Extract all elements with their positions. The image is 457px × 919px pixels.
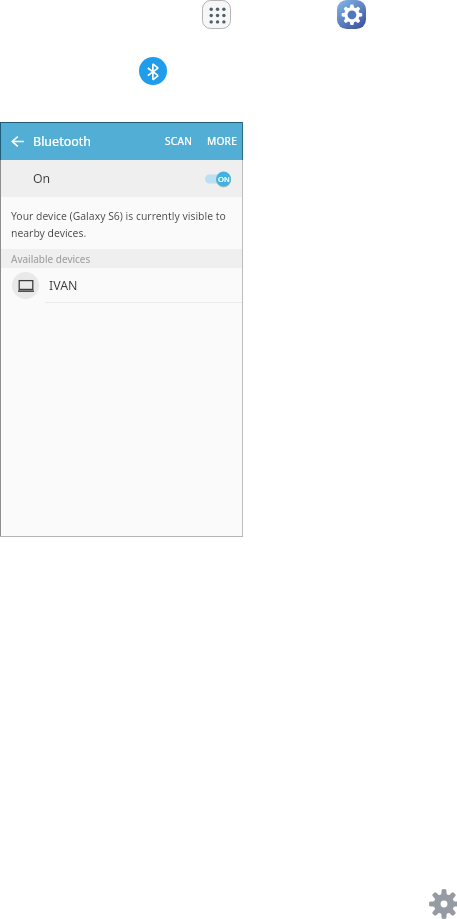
button[interactable]: Settings	[337, 0, 366, 29]
button[interactable]: SCAN	[160, 122, 198, 160]
staticText: Available devices	[11, 252, 91, 266]
button[interactable]: Navigate up	[4, 127, 32, 155]
button[interactable]: Apps	[202, 0, 231, 29]
button[interactable]: Settings	[428, 888, 457, 919]
staticText: MORE	[207, 134, 237, 148]
staticText: Your device (Galaxy S6) is currently vis…	[11, 209, 243, 240]
staticText: ON	[218, 174, 230, 184]
staticText: Bluetooth	[33, 133, 92, 150]
button[interactable]: MORE	[202, 122, 242, 160]
button[interactable]: IVAN	[0, 268, 243, 302]
button[interactable]: Bluetooth	[139, 57, 167, 85]
staticText: IVAN	[49, 277, 78, 294]
button[interactable]: On	[0, 160, 243, 197]
staticText: On	[33, 170, 51, 187]
staticText: SCAN	[165, 134, 193, 148]
